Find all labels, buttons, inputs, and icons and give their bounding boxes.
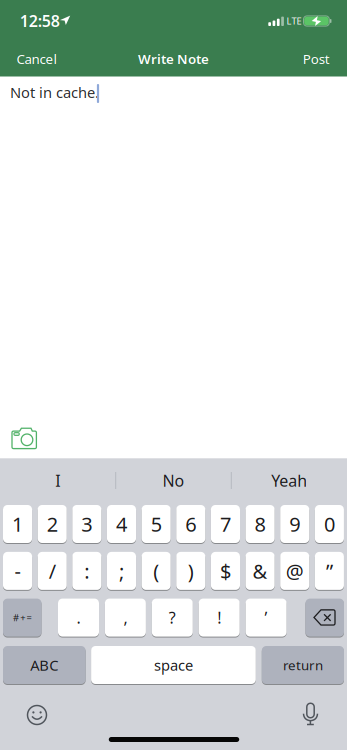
staticText: Not in cache. <box>10 83 99 102</box>
staticText: $ <box>220 558 231 584</box>
staticText: I <box>55 470 60 491</box>
button[interactable]: 2 <box>38 504 67 543</box>
button[interactable]: Dictation <box>288 692 332 736</box>
staticText: 4 <box>116 511 127 537</box>
button[interactable]: ) <box>176 551 205 590</box>
button[interactable]: Delete <box>305 598 344 637</box>
button[interactable]: ( <box>142 551 171 590</box>
button[interactable]: . <box>58 598 99 637</box>
button[interactable]: 5 <box>142 504 171 543</box>
staticText: Post <box>303 50 330 68</box>
button[interactable]: @ <box>280 551 309 590</box>
staticText: 5 <box>151 511 162 537</box>
button[interactable]: ” <box>315 551 344 590</box>
staticText: Cancel <box>17 50 57 68</box>
staticText: 2 <box>47 511 58 537</box>
button[interactable]: ABC <box>3 645 86 684</box>
button[interactable]: space <box>91 645 256 684</box>
staticText: ( <box>153 558 159 584</box>
button[interactable]: 0 <box>315 504 344 543</box>
staticText: 1 <box>12 511 23 537</box>
button[interactable]: I <box>8 463 108 497</box>
button[interactable]: 1 <box>3 504 32 543</box>
button[interactable]: 3 <box>72 504 101 543</box>
staticText: & <box>253 558 268 584</box>
staticText: 0 <box>324 511 335 537</box>
staticText: ? <box>169 607 176 628</box>
staticText: 7 <box>220 511 231 537</box>
button[interactable]: , <box>105 598 146 637</box>
button[interactable]: Cancel <box>17 48 87 70</box>
staticText: ’ <box>265 607 268 628</box>
button[interactable]: 8 <box>245 504 275 543</box>
button[interactable]: ; <box>107 551 136 590</box>
button[interactable]: $ <box>211 551 240 590</box>
staticText: @ <box>286 558 304 584</box>
button[interactable]: Post <box>270 48 330 70</box>
button[interactable]: #+= <box>3 598 41 637</box>
button[interactable]: Attach Photo <box>12 427 37 449</box>
button[interactable]: / <box>38 551 67 590</box>
staticText: 6 <box>185 511 196 537</box>
button[interactable]: 7 <box>211 504 240 543</box>
button[interactable]: ? <box>152 598 193 637</box>
staticText: ” <box>326 558 333 584</box>
staticText: ! <box>217 607 221 628</box>
button[interactable]: ! <box>199 598 240 637</box>
button[interactable]: Emoji <box>15 693 59 737</box>
staticText: ; <box>119 558 124 584</box>
staticText: - <box>15 558 21 584</box>
staticText: : <box>84 558 89 584</box>
staticText: 3 <box>81 511 92 537</box>
button[interactable]: No <box>123 463 223 497</box>
button[interactable]: & <box>245 551 275 590</box>
button[interactable]: Yeah <box>239 463 339 497</box>
button[interactable]: return <box>262 645 344 684</box>
staticText: ABC <box>30 655 58 675</box>
staticText: #+= <box>13 611 32 624</box>
button[interactable]: - <box>3 551 32 590</box>
staticText: 8 <box>255 511 266 537</box>
staticText: . <box>76 607 80 628</box>
button[interactable]: 9 <box>280 504 309 543</box>
staticText: , <box>123 607 127 628</box>
staticText: ) <box>188 558 194 584</box>
button[interactable]: 4 <box>107 504 136 543</box>
staticText: 12:58 <box>20 10 60 31</box>
button[interactable]: ’ <box>246 598 287 637</box>
staticText: / <box>49 558 56 584</box>
button[interactable]: 6 <box>176 504 205 543</box>
button[interactable]: : <box>72 551 101 590</box>
staticText: Yeah <box>271 470 307 491</box>
staticText: return <box>283 656 323 674</box>
staticText: space <box>154 655 193 675</box>
staticText: Write Note <box>138 50 209 68</box>
staticText: LTE <box>286 15 301 27</box>
staticText: No <box>162 470 184 491</box>
staticText: 9 <box>289 511 300 537</box>
